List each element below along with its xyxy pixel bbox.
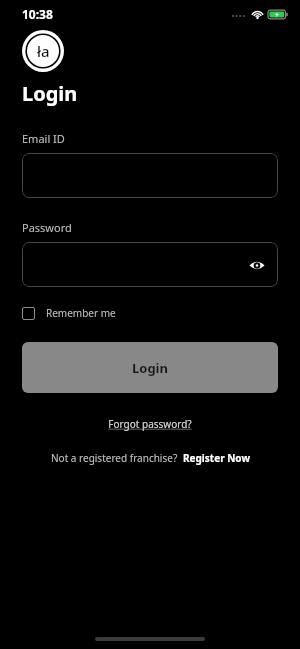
button[interactable]: Email ID input	[22, 153, 278, 198]
staticText: Login	[132, 359, 168, 377]
staticText: Forgot password?	[108, 417, 192, 431]
staticText: Email ID	[22, 131, 65, 146]
staticText: Password	[22, 220, 72, 235]
staticText: 10:38	[22, 6, 53, 22]
staticText: ła	[37, 41, 50, 61]
staticText: Remember me	[46, 306, 116, 320]
button[interactable]: Remember me	[22, 303, 116, 323]
staticText: Not a registered franchise?	[51, 451, 178, 465]
staticText: Register Now	[183, 451, 250, 465]
button[interactable]: Show password	[22, 242, 278, 287]
button[interactable]: Login	[22, 342, 278, 393]
button[interactable]: Forgot password?	[102, 414, 198, 434]
button[interactable]: Register Now	[183, 451, 250, 465]
staticText: Login	[22, 80, 78, 107]
button[interactable]: Show password	[245, 253, 269, 277]
